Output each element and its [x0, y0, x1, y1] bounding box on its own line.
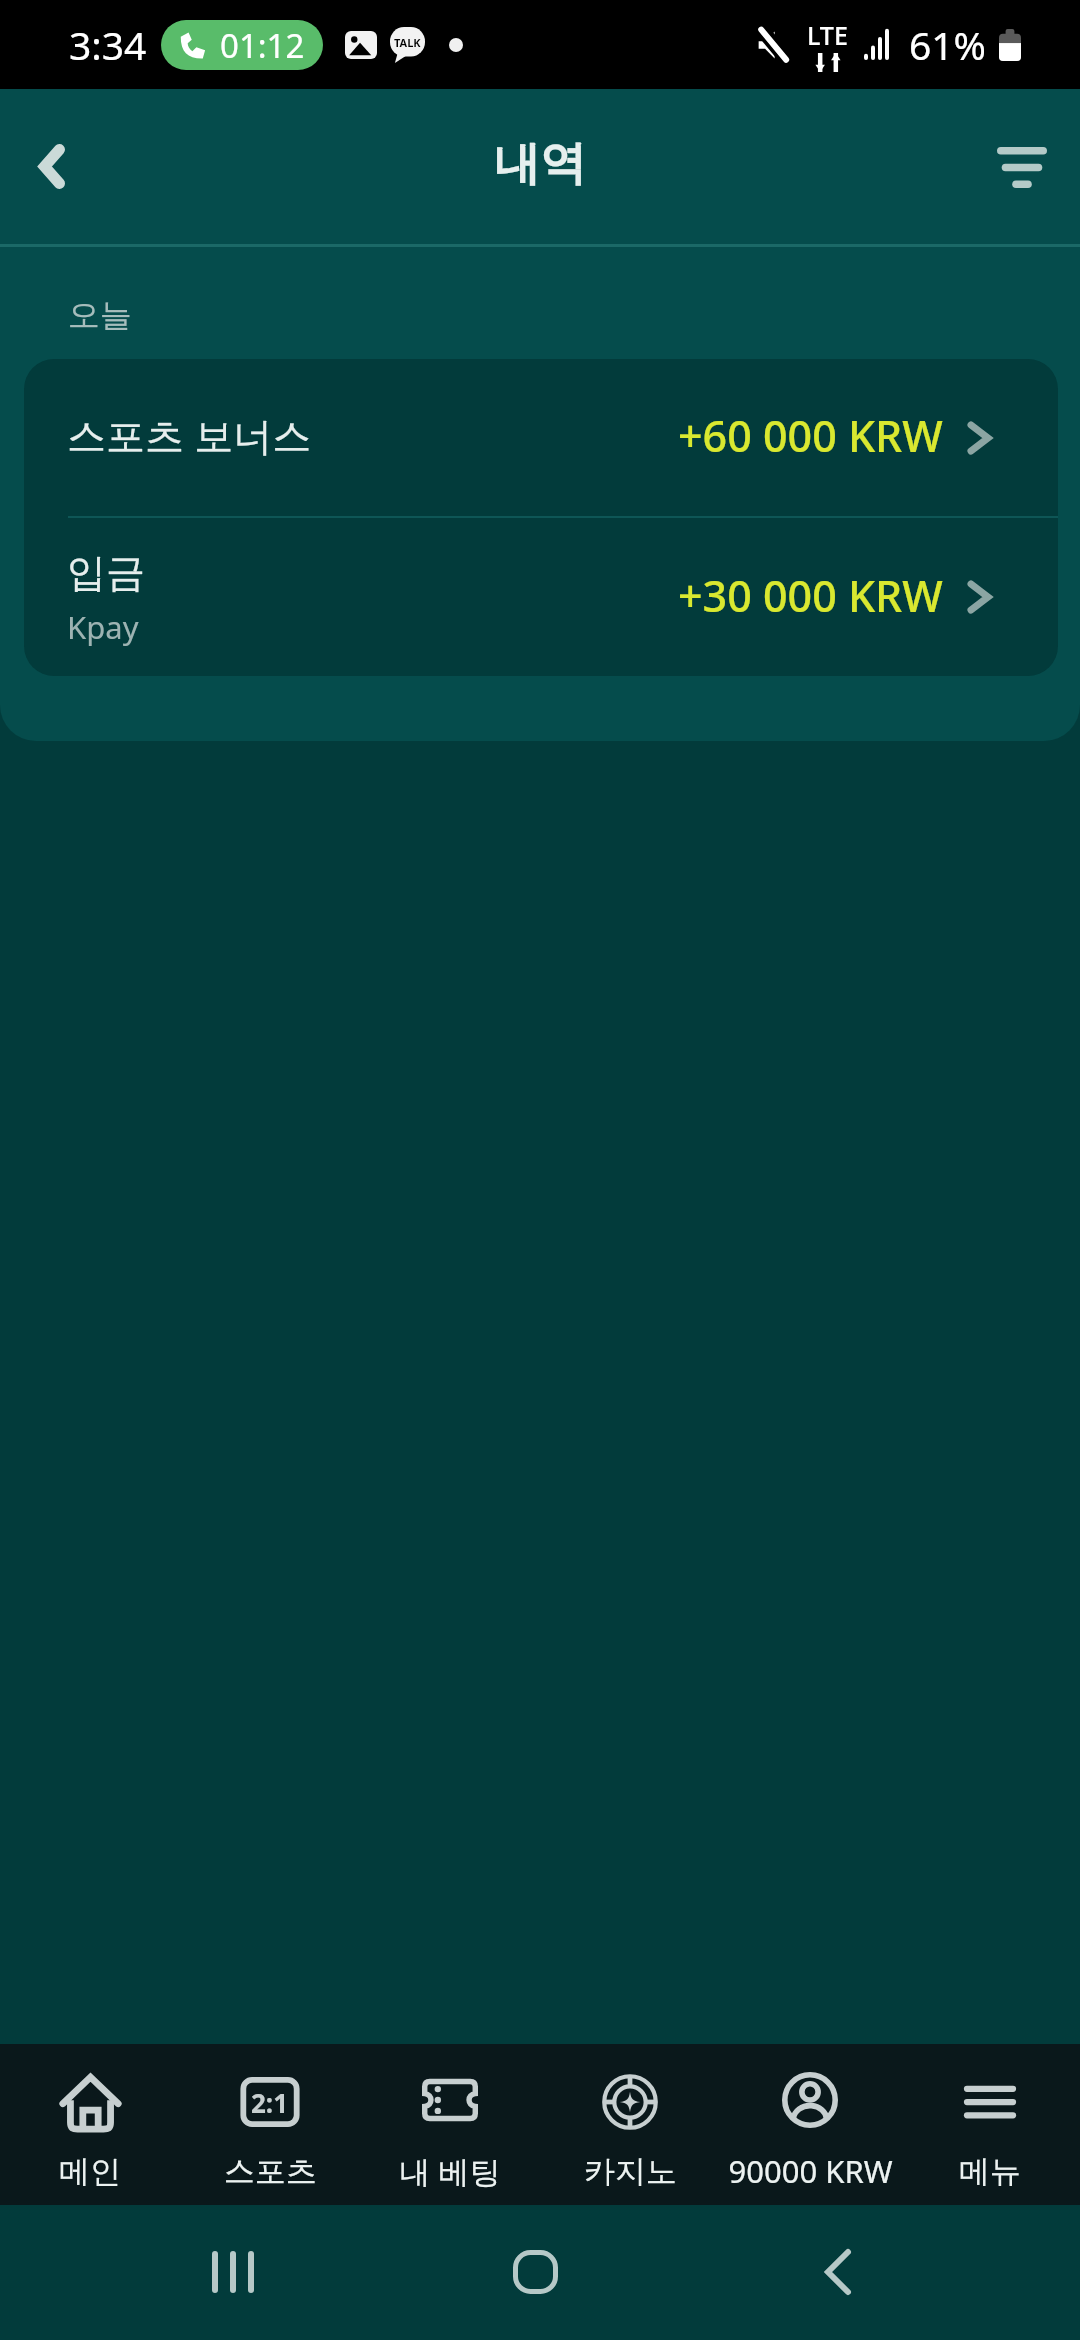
- staticText: 내역: [494, 135, 586, 193]
- staticText: 01:12: [220, 23, 305, 68]
- staticText: 내 베팅: [399, 2150, 501, 2192]
- staticText: 스포츠 보너스: [67, 408, 312, 461]
- staticText: +30 000 KRW: [678, 566, 943, 625]
- button[interactable]: 메뉴: [900, 2044, 1080, 2205]
- button[interactable]: Back: [798, 2230, 878, 2314]
- button[interactable]: Filter: [986, 131, 1058, 203]
- staticText: LTE: [807, 18, 848, 52]
- staticText: 90000 KRW: [728, 2150, 893, 2192]
- button[interactable]: 입금: [24, 518, 1058, 676]
- button[interactable]: 스포츠 보너스: [24, 359, 1058, 516]
- staticText: +60 000 KRW: [678, 406, 943, 465]
- button[interactable]: 카지노: [540, 2044, 720, 2205]
- staticText: 3:34: [69, 18, 147, 71]
- button[interactable]: 내 베팅: [360, 2044, 540, 2205]
- staticText: 카지노: [584, 2152, 677, 2191]
- staticText: 61%: [909, 18, 987, 71]
- staticText: 입금: [67, 548, 145, 597]
- button[interactable]: Home: [495, 2230, 575, 2314]
- button[interactable]: 2:1: [180, 2044, 360, 2205]
- staticText: TALK: [394, 35, 421, 50]
- staticText: 메인: [59, 2152, 121, 2191]
- staticText: 메뉴: [959, 2152, 1021, 2191]
- button[interactable]: Back: [20, 134, 84, 198]
- staticText: Kpay: [67, 606, 139, 648]
- button[interactable]: 메인: [0, 2044, 180, 2205]
- staticText: 스포츠: [224, 2152, 317, 2191]
- button[interactable]: Recents: [193, 2230, 273, 2314]
- staticText: 2:1: [251, 2085, 289, 2120]
- staticText: 오늘: [68, 295, 132, 335]
- button[interactable]: 90000 KRW: [720, 2044, 900, 2205]
